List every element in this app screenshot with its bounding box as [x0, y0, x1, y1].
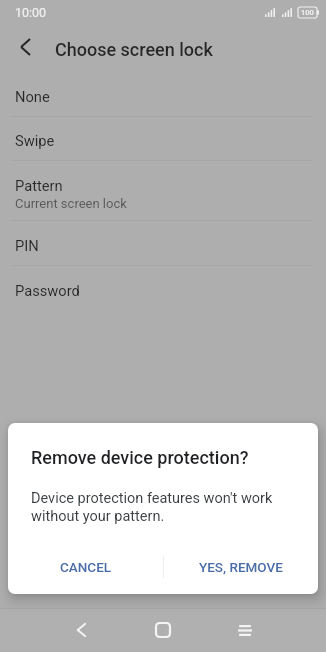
staticText: 100	[301, 8, 314, 17]
staticText: Choose screen lock	[55, 39, 213, 60]
staticText: 10:00	[15, 5, 47, 20]
staticText: Current screen lock	[15, 196, 127, 211]
button[interactable]: Home	[122, 608, 204, 652]
staticText: Pattern	[15, 177, 63, 194]
button[interactable]: Recent apps	[204, 608, 286, 652]
button[interactable]: Swipe	[0, 117, 326, 161]
staticText: PIN	[15, 237, 39, 254]
staticText: YES, REMOVE	[199, 559, 283, 575]
button[interactable]: Back	[41, 608, 122, 652]
staticText: Password	[15, 282, 80, 299]
button[interactable]: PIN	[0, 221, 326, 266]
button[interactable]: Navigate up	[7, 29, 43, 65]
staticText: Remove device protection?	[31, 447, 249, 468]
button[interactable]: YES, REMOVE	[163, 541, 318, 593]
button[interactable]: CANCEL	[8, 541, 162, 593]
staticText: CANCEL	[60, 559, 112, 575]
staticText: None	[15, 88, 50, 105]
button[interactable]: Password	[0, 266, 326, 310]
button[interactable]: None	[0, 72, 326, 117]
staticText: Swipe	[15, 132, 55, 149]
button[interactable]: Pattern	[0, 161, 326, 221]
staticText: Device protection features won't work wi…	[31, 490, 273, 525]
